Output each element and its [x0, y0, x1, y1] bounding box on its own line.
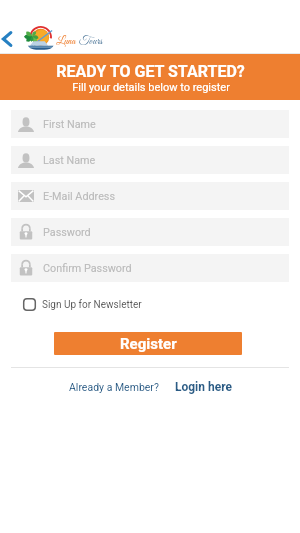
button[interactable]: E-Mail Address	[11, 182, 289, 210]
button[interactable]: Back	[0, 21, 14, 57]
staticText: Login here	[175, 380, 232, 394]
staticText: E-Mail Address	[43, 190, 115, 203]
button[interactable]: Login here	[175, 380, 232, 394]
staticText: Last Name	[43, 154, 96, 167]
staticText: READY TO GET STARTED?	[56, 62, 245, 81]
button[interactable]: Last Name	[11, 146, 289, 174]
button[interactable]: Register	[54, 332, 242, 355]
staticText: Register	[120, 335, 177, 353]
staticText: Password	[43, 226, 91, 239]
staticText: Confirm Password	[43, 262, 132, 275]
staticText: Sign Up for Newsletter	[42, 299, 142, 311]
button[interactable]: Confirm Password	[11, 254, 289, 282]
staticText: Tours	[79, 35, 103, 49]
staticText: First Name	[43, 118, 96, 131]
staticText: Fill your details below to register	[72, 81, 230, 94]
button[interactable]: First Name	[11, 110, 289, 138]
button[interactable]: Sign Up for Newsletter	[23, 298, 142, 311]
button[interactable]: Password	[11, 218, 289, 246]
staticText: Luna	[56, 35, 76, 49]
staticText: Already a Member?	[69, 381, 159, 393]
